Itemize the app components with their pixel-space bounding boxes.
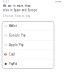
staticText: Google Pay [9,34,25,37]
staticText: We are in more than [3,4,31,8]
staticText: Wallet [9,24,17,28]
button[interactable]: Wallet [2,21,54,30]
staticText: 9:41 [3,0,10,3]
staticText: PayPal [9,62,17,66]
button[interactable]: Apple Pay [2,40,54,49]
staticText: Choose how to pay [3,14,30,18]
button[interactable]: Google Pay [2,31,54,40]
staticText: Apple Pay [9,43,23,47]
button[interactable]: PayPal [2,59,54,68]
staticText: crisis in Spain and Europe [3,8,38,12]
button[interactable]: Card [2,50,54,59]
staticText: Card [9,53,15,56]
